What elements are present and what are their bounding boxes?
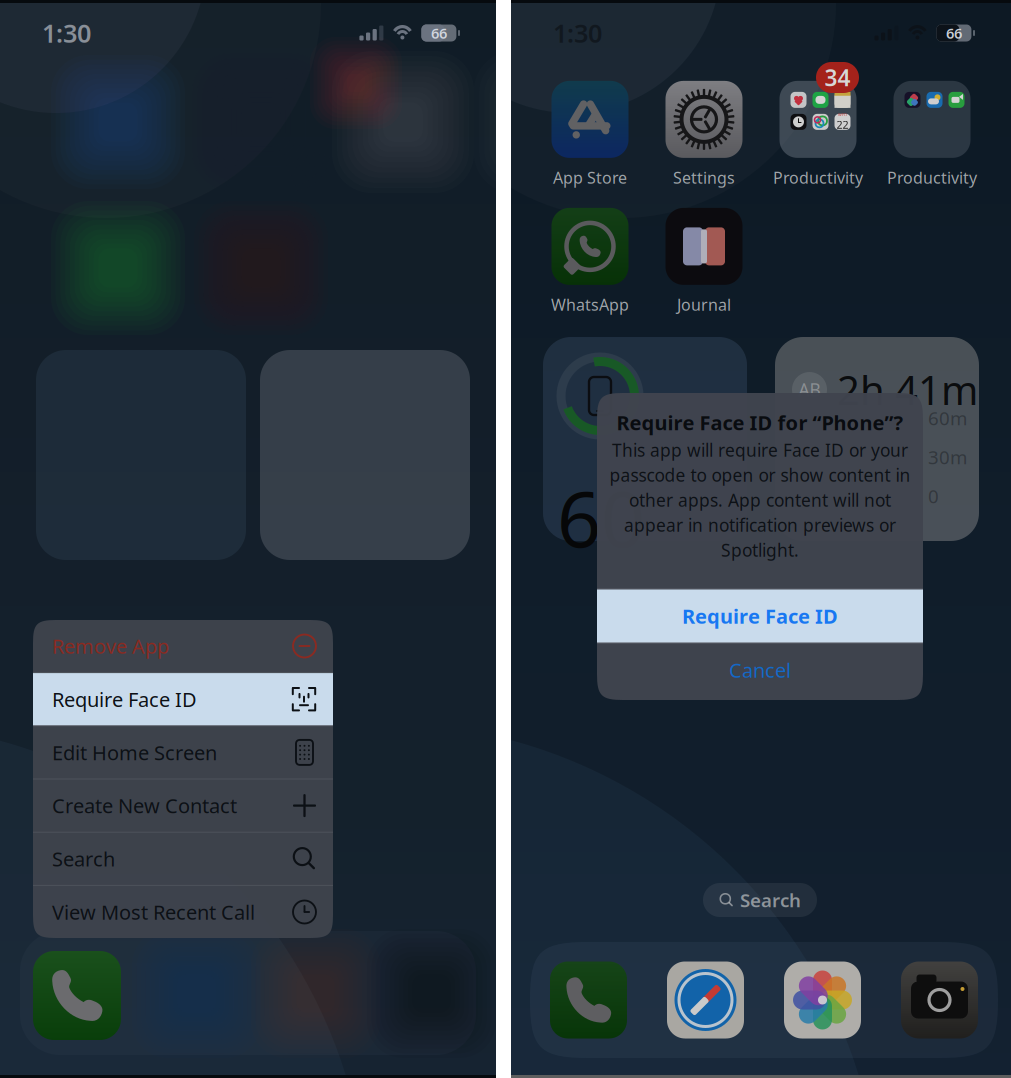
- button[interactable]: [550, 961, 627, 1038]
- staticText: Journal: [677, 294, 731, 315]
- staticText: passcode to open or show content in: [609, 463, 910, 486]
- staticText: WED: [838, 112, 847, 117]
- staticText: Search: [740, 888, 801, 912]
- button[interactable]: Settings: [647, 77, 761, 192]
- staticText: WhatsApp: [551, 294, 629, 315]
- button[interactable]: App Store: [533, 77, 647, 192]
- staticText: App Store: [553, 167, 627, 188]
- staticText: other apps. App content will not: [629, 488, 891, 511]
- staticText: Productivity: [887, 167, 977, 188]
- staticText: Productivity: [773, 167, 863, 188]
- staticText: Require Face ID: [52, 686, 197, 712]
- staticText: Search: [52, 845, 115, 872]
- staticText: 60: [557, 466, 645, 569]
- staticText: Remove App: [52, 633, 169, 659]
- staticText: 30m: [928, 445, 967, 469]
- button[interactable]: [901, 961, 978, 1038]
- staticText: 34: [824, 62, 850, 92]
- staticText: Edit Home Screen: [52, 739, 217, 766]
- button[interactable]: View Most Recent Call: [33, 886, 333, 938]
- staticText: View Most Recent Call: [52, 899, 255, 925]
- button[interactable]: Require Face ID: [597, 589, 923, 642]
- button[interactable]: Journal: [647, 204, 761, 319]
- button[interactable]: Require Face ID: [33, 673, 333, 725]
- staticText: Settings: [673, 167, 735, 188]
- staticText: 60m: [928, 406, 967, 430]
- button[interactable]: Productivity: [875, 77, 989, 192]
- button[interactable]: WhatsApp: [533, 204, 647, 319]
- staticText: Create New Contact: [52, 792, 237, 819]
- button[interactable]: Search: [703, 883, 817, 917]
- button[interactable]: Create New Contact: [33, 779, 333, 832]
- staticText: appear in notification previews or: [624, 513, 896, 536]
- staticText: 2h 41m: [837, 363, 978, 416]
- staticText: 66: [946, 23, 962, 43]
- button[interactable]: Cancel: [597, 643, 923, 696]
- staticText: Require Face ID: [682, 603, 838, 629]
- staticText: Require Face ID for “Phone”?: [616, 409, 903, 436]
- staticText: 22: [836, 117, 848, 132]
- staticText: 1:30: [42, 16, 91, 50]
- button[interactable]: WED: [761, 77, 875, 192]
- button[interactable]: Remove App: [33, 620, 333, 672]
- button[interactable]: Search: [33, 833, 333, 885]
- staticText: AB: [798, 378, 820, 401]
- staticText: 0: [928, 484, 939, 508]
- button[interactable]: [667, 961, 744, 1038]
- staticText: 1:30: [553, 16, 602, 50]
- staticText: Cancel: [729, 657, 791, 683]
- button[interactable]: Edit Home Screen: [33, 726, 333, 778]
- staticText: This app will require Face ID or your: [612, 438, 908, 461]
- button[interactable]: [784, 961, 861, 1038]
- staticText: 66: [431, 23, 447, 43]
- staticText: Spotlight.: [721, 538, 799, 561]
